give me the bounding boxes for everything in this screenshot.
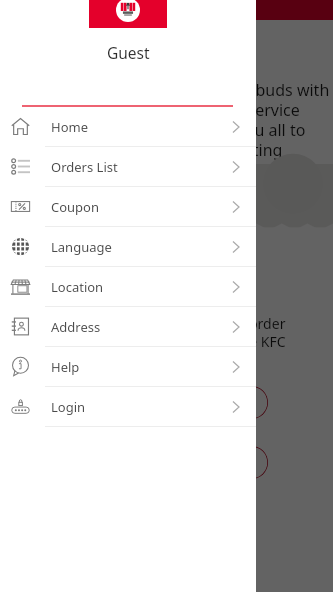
- button[interactable]: [26, 386, 268, 419]
- staticText: Login: [51, 398, 86, 416]
- staticText: We are here to tickle your taste buds wi…: [18, 79, 330, 160]
- staticText: Orders List: [51, 158, 118, 176]
- staticText: Language: [51, 238, 112, 256]
- button[interactable]: Home: [0, 107, 256, 147]
- staticText: Just place your next favourite food orde…: [20, 314, 286, 351]
- staticText: Guest: [107, 42, 150, 63]
- button[interactable]: Language: [0, 227, 256, 267]
- button[interactable]: Coupon: [0, 187, 256, 227]
- button[interactable]: [26, 446, 268, 479]
- staticText: Coupon: [51, 198, 100, 216]
- staticText: Home: [51, 118, 88, 136]
- button[interactable]: Address: [0, 307, 256, 347]
- staticText: Location: [51, 278, 104, 296]
- button[interactable]: Location: [0, 267, 256, 307]
- staticText: Address: [51, 318, 101, 336]
- button[interactable]: Help: [0, 347, 256, 387]
- staticText: Help: [51, 358, 80, 376]
- button[interactable]: Orders List: [0, 147, 256, 187]
- button[interactable]: Login: [0, 387, 256, 427]
